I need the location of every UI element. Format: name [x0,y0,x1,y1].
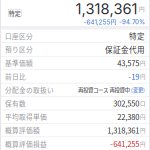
button[interactable]: 概算評価損益 [0,137,150,150]
button[interactable]: 前日比 [0,70,150,83]
button[interactable]: 保有数 [0,97,150,110]
button[interactable]: 口座区分 [0,29,150,43]
button[interactable]: 預り区分 [0,43,150,56]
staticText: 円 [140,72,145,80]
button[interactable]: 基準価額 [0,56,150,70]
staticText: 預り区分 [5,45,33,54]
staticText: 1,318,361 [107,125,139,136]
button[interactable]: 特定 [8,9,21,17]
staticText: 特定 [9,9,21,17]
staticText: 1,318,361 [75,0,137,18]
button[interactable]: 分配金の取扱い [0,83,150,97]
button[interactable]: 概算評価額 [0,124,150,137]
staticText: 302,550 [113,98,139,109]
staticText: 円 [140,140,145,148]
staticText: 22,380 [117,111,139,122]
staticText: (変更) [131,86,145,93]
staticText: 43,575 [117,57,139,68]
staticText: 保有数 [5,98,26,108]
staticText: -19 [128,71,139,82]
staticText: 概算評価損益 [5,139,47,149]
staticText: -641,255 [110,138,139,149]
staticText: 再投資コース [78,86,108,94]
staticText: 口 [140,99,145,107]
staticText: 保証金代用 [105,44,145,55]
staticText: 円 [140,113,145,120]
staticText: 平均取得単価 [5,112,47,122]
staticText: 概算評価額 [5,125,40,135]
staticText: -94.70% [119,18,145,26]
button[interactable]: 平均取得単価 [0,110,150,124]
staticText: 特定 [129,30,145,41]
staticText: 基準価額 [5,58,33,68]
staticText: -641,255円 [83,18,116,26]
staticText: 円 [140,126,145,134]
staticText: 再投資中 [109,86,129,94]
staticText: 分配金の取扱い [5,85,54,95]
staticText: 口座区分 [5,31,33,41]
staticText: 円 [139,5,145,13]
staticText: 円 [140,59,145,67]
staticText: 前日比 [5,71,26,81]
